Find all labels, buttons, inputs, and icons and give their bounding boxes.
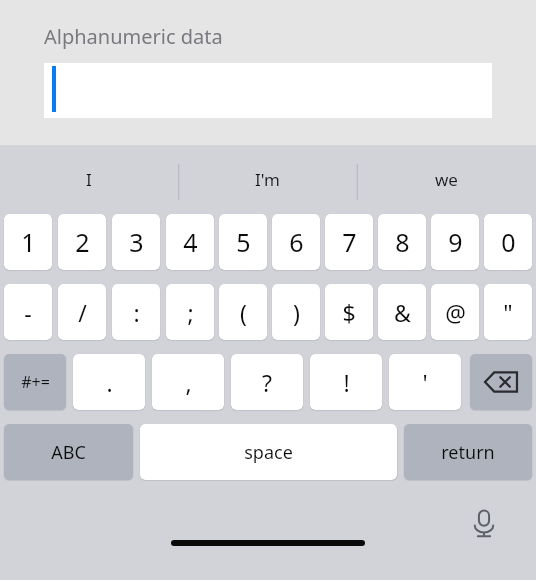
- staticText: ": [503, 297, 513, 328]
- button[interactable]: :: [112, 284, 160, 340]
- button[interactable]: ": [484, 284, 532, 340]
- staticText: .: [106, 367, 113, 398]
- button[interactable]: I: [0, 145, 178, 214]
- button[interactable]: we: [357, 145, 536, 214]
- button[interactable]: 6: [272, 214, 320, 270]
- staticText: ;: [187, 297, 194, 328]
- staticText: 6: [289, 225, 304, 259]
- staticText: ,: [185, 367, 192, 398]
- button[interactable]: 7: [325, 214, 373, 270]
- staticText: 4: [183, 225, 198, 259]
- button[interactable]: 8: [378, 214, 426, 270]
- staticText: 8: [395, 225, 410, 259]
- button[interactable]: &: [378, 284, 426, 340]
- staticText: &: [394, 297, 411, 328]
- button[interactable]: ;: [166, 284, 214, 340]
- button[interactable]: space: [140, 424, 397, 480]
- button[interactable]: /: [58, 284, 106, 340]
- button[interactable]: .: [73, 354, 145, 410]
- staticText: #+=: [21, 371, 50, 393]
- staticText: ): [293, 297, 300, 328]
- staticText: I'm: [255, 168, 280, 191]
- button[interactable]: $: [325, 284, 373, 340]
- button[interactable]: 4: [166, 214, 214, 270]
- button[interactable]: Delete: [470, 354, 532, 410]
- button[interactable]: ): [272, 284, 320, 340]
- staticText: 1: [21, 225, 36, 259]
- button[interactable]: ABC: [4, 424, 133, 480]
- button[interactable]: ,: [152, 354, 224, 410]
- staticText: -: [24, 297, 32, 328]
- staticText: :: [133, 297, 140, 328]
- button[interactable]: 3: [112, 214, 160, 270]
- staticText: 3: [129, 225, 144, 259]
- button[interactable]: 1: [4, 214, 52, 270]
- staticText: Alphanumeric data: [44, 23, 223, 50]
- button[interactable]: -: [4, 284, 52, 340]
- button[interactable]: 2: [58, 214, 106, 270]
- staticText: return: [441, 440, 495, 465]
- staticText: space: [244, 440, 293, 465]
- staticText: (: [240, 297, 247, 328]
- staticText: we: [435, 168, 458, 191]
- button[interactable]: Dictate: [462, 502, 506, 546]
- button[interactable]: (: [219, 284, 267, 340]
- staticText: ABC: [51, 440, 86, 465]
- button[interactable]: #+=: [4, 354, 66, 410]
- staticText: ?: [262, 367, 272, 398]
- button[interactable]: !: [310, 354, 382, 410]
- button[interactable]: ': [389, 354, 461, 410]
- staticText: 0: [501, 225, 516, 259]
- staticText: 5: [236, 225, 251, 259]
- staticText: 7: [342, 225, 357, 259]
- button[interactable]: I'm: [178, 145, 357, 214]
- button[interactable]: return: [404, 424, 532, 480]
- staticText: 9: [448, 225, 463, 259]
- staticText: ': [422, 367, 428, 398]
- button[interactable]: [44, 63, 492, 118]
- button[interactable]: ?: [231, 354, 303, 410]
- staticText: !: [343, 367, 350, 398]
- button[interactable]: 0: [484, 214, 532, 270]
- button[interactable]: 9: [431, 214, 479, 270]
- button[interactable]: @: [431, 284, 479, 340]
- staticText: /: [78, 297, 87, 328]
- button[interactable]: 5: [219, 214, 267, 270]
- staticText: $: [342, 297, 356, 328]
- staticText: @: [445, 297, 466, 328]
- staticText: I: [86, 168, 92, 191]
- staticText: 2: [75, 225, 90, 259]
